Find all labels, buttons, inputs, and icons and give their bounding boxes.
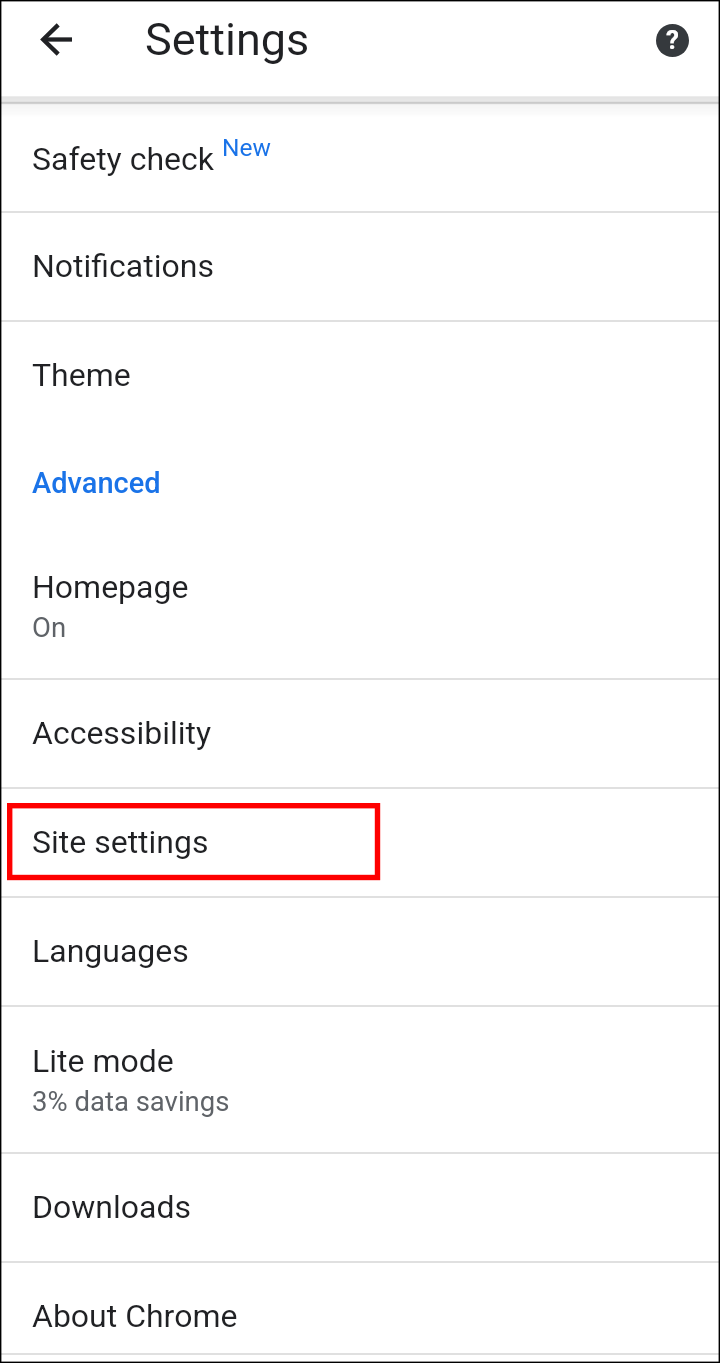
button[interactable]: Help — [640, 8, 704, 72]
staticText: Notifications — [32, 247, 214, 285]
staticText: New — [222, 133, 271, 162]
button[interactable]: Homepage — [0, 533, 720, 678]
staticText: Languages — [32, 932, 189, 970]
staticText: Downloads — [32, 1188, 191, 1226]
staticText: On — [32, 611, 67, 643]
button[interactable]: Advanced — [0, 431, 720, 535]
button[interactable]: Accessibility — [0, 679, 720, 787]
button[interactable]: Back — [25, 8, 88, 71]
staticText: Theme — [32, 356, 131, 394]
button[interactable]: Downloads — [0, 1153, 720, 1261]
button[interactable]: Safety check — [0, 106, 720, 211]
staticText: Safety check — [32, 140, 214, 178]
button[interactable]: Site settings — [0, 788, 720, 896]
staticText: Site settings — [32, 823, 209, 861]
button[interactable]: Lite mode — [0, 1006, 720, 1152]
staticText: Lite mode — [32, 1042, 174, 1080]
staticText: About Chrome — [32, 1297, 238, 1335]
button[interactable]: Notifications — [0, 212, 720, 320]
staticText: Advanced — [32, 466, 161, 500]
button[interactable]: Theme — [0, 321, 720, 429]
staticText: 3% data savings — [32, 1085, 230, 1117]
button[interactable]: About Chrome — [0, 1262, 720, 1363]
staticText: Homepage — [32, 568, 189, 606]
staticText: Accessibility — [32, 714, 212, 752]
staticText: ? — [666, 25, 679, 55]
button[interactable]: Languages — [0, 897, 720, 1005]
staticText: Settings — [145, 13, 310, 66]
